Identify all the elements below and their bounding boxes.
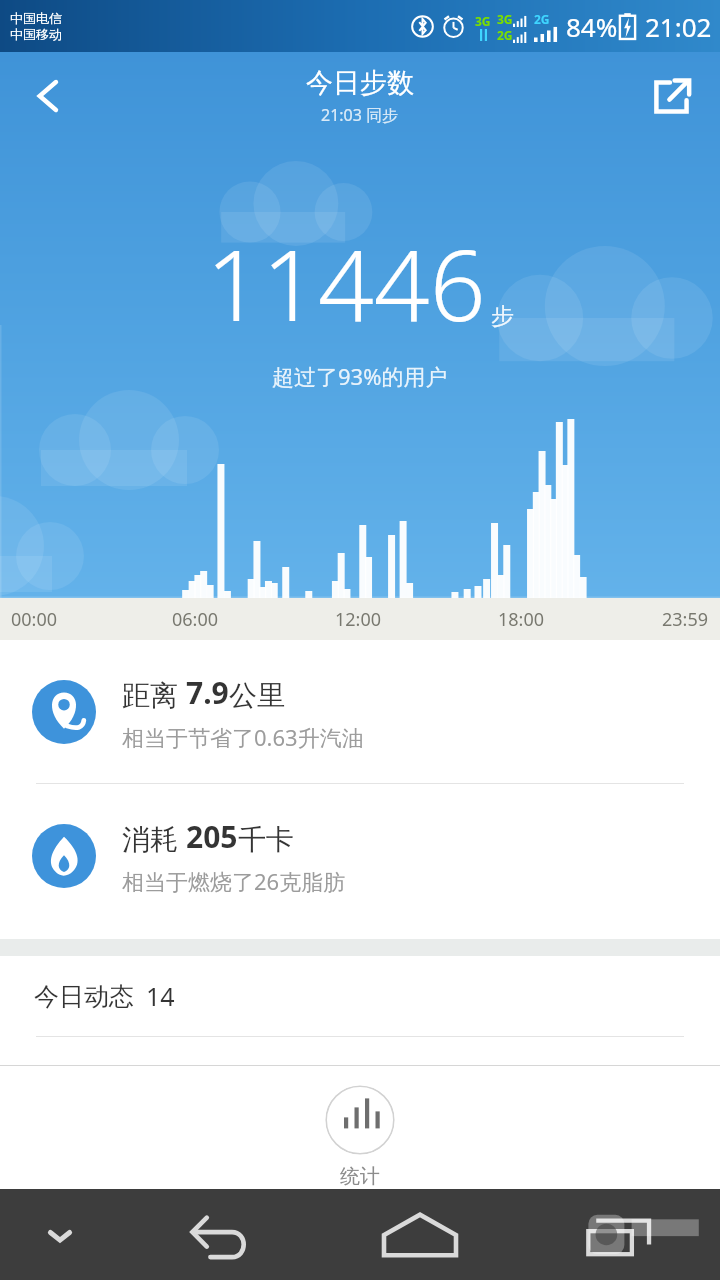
staticText: 205 — [186, 816, 238, 857]
staticText: 84% — [566, 9, 618, 44]
staticText: 18:00 — [498, 607, 545, 632]
staticText: 12:00 — [335, 607, 382, 632]
staticText: 相当于燃烧了26克脂肪 — [122, 866, 346, 896]
staticText: 21:03 同步 — [321, 104, 399, 126]
staticText: 今日动态 — [34, 981, 134, 1012]
staticText: 21:02 — [645, 9, 712, 44]
button[interactable]: Back — [20, 67, 78, 125]
staticText: 3G — [475, 13, 491, 29]
staticText: 公里 — [229, 678, 285, 713]
staticText: 14 — [146, 979, 175, 1013]
staticText: 06:00 — [172, 607, 219, 632]
staticText: 3G — [497, 11, 513, 27]
staticText: 消耗 — [122, 819, 186, 857]
staticText: 00:00 — [11, 607, 58, 632]
staticText: 相当于节省了0.63升汽油 — [122, 722, 364, 752]
button[interactable]: 距离 — [0, 640, 720, 783]
staticText: 中国移动 — [10, 26, 62, 42]
button[interactable]: Back — [120, 1189, 320, 1280]
staticText: 中国电信 — [10, 10, 62, 26]
button[interactable]: Hide keyboard — [0, 1189, 120, 1280]
staticText: 距离 — [122, 675, 186, 713]
staticText: 11446 — [206, 216, 486, 349]
staticText: 2G — [534, 11, 550, 27]
staticText: 2G — [497, 27, 513, 43]
button[interactable]: Home — [320, 1189, 520, 1280]
button[interactable]: Share — [646, 70, 698, 122]
button[interactable]: 今日动态 — [0, 956, 720, 1036]
staticText: 今日步数 — [306, 66, 414, 100]
button[interactable]: 统计 — [0, 1085, 720, 1189]
staticText: 千卡 — [238, 822, 294, 857]
button[interactable]: Recents — [520, 1189, 720, 1280]
staticText: 23:59 — [662, 607, 709, 632]
button[interactable]: 消耗 — [0, 784, 720, 927]
staticText: 步 — [491, 302, 514, 331]
staticText: 超过了93%的用户 — [272, 361, 448, 391]
staticText: 7.9 — [186, 672, 229, 713]
staticText: 统计 — [340, 1164, 380, 1189]
